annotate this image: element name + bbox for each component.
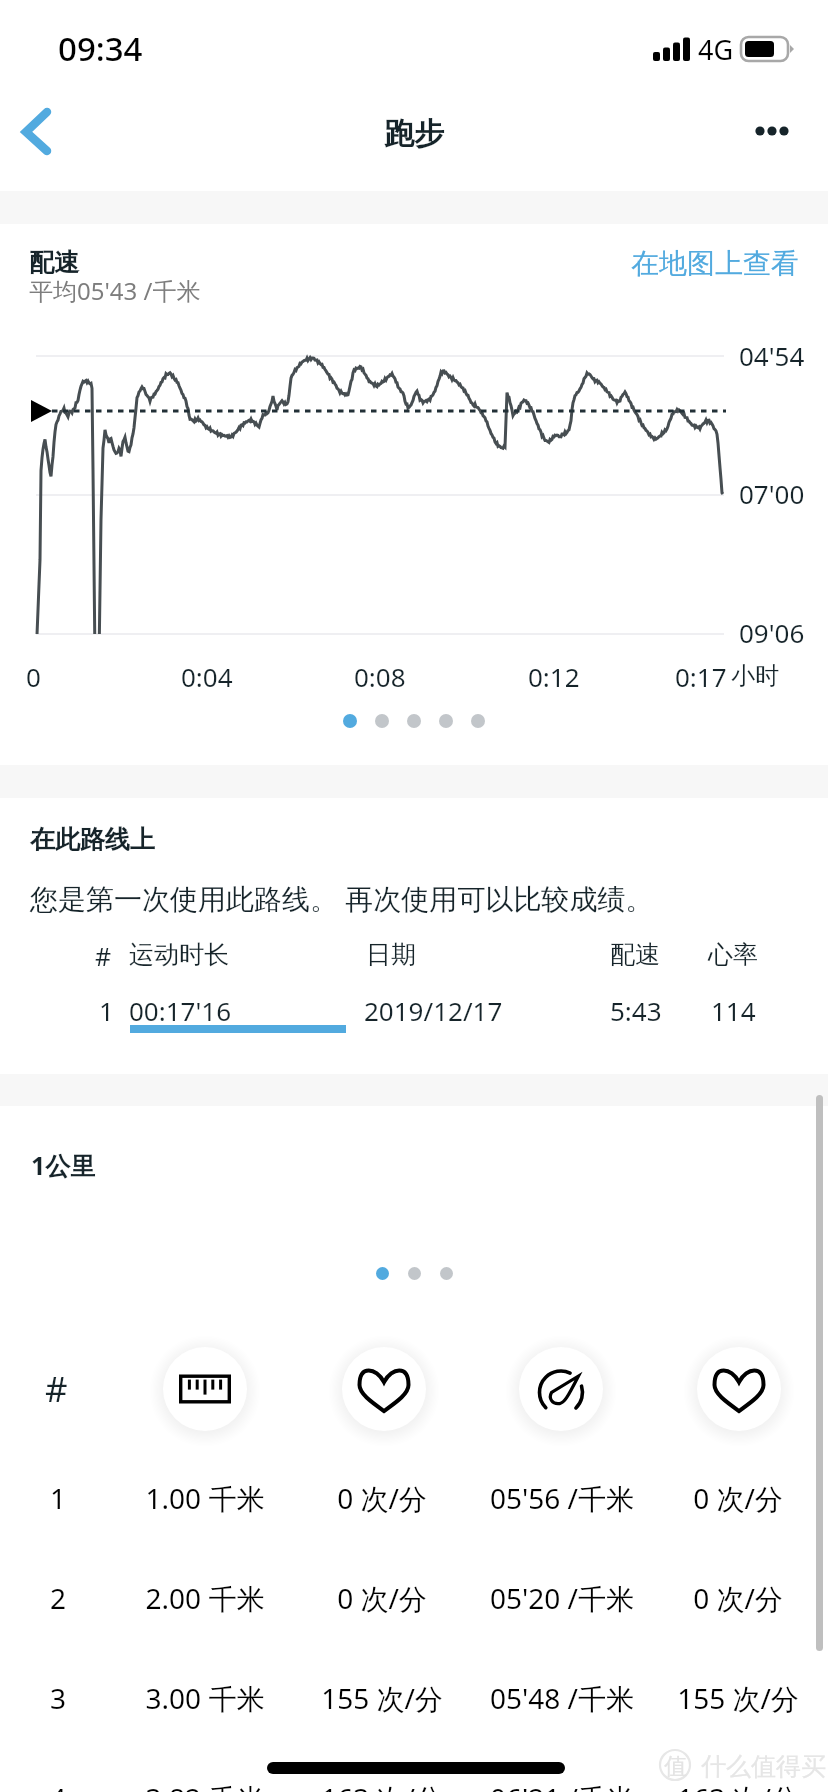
staticText: 07'00 <box>739 476 805 511</box>
staticText: 00:17'16 <box>129 993 232 1028</box>
staticText: 平均05'43 /千米 <box>29 274 201 307</box>
staticText: 3.00 千米 <box>55 1679 355 1717</box>
staticText: 0:08 <box>354 659 406 694</box>
staticText: 3.82 千米 <box>55 1779 355 1792</box>
button[interactable]: Chart page ${i + 1} <box>343 714 357 728</box>
staticText: 值 <box>664 1752 687 1781</box>
staticText: 2 <box>0 1579 208 1617</box>
button[interactable]: Splits page ${i + 1} <box>440 1267 453 1280</box>
button[interactable]: 2 <box>0 1548 828 1648</box>
button[interactable]: 1 <box>0 978 828 1040</box>
staticText: 0 次/分 <box>232 1479 532 1517</box>
button[interactable]: Splits page ${i + 1} <box>408 1267 421 1280</box>
staticText: 小时 <box>731 661 779 691</box>
staticText: 06'21 /千米 <box>412 1779 712 1792</box>
staticText: 什么值得买 <box>701 1751 826 1782</box>
staticText: 0 次/分 <box>232 1579 532 1617</box>
staticText: 163 次/分 <box>232 1779 532 1792</box>
staticText: 163 次/分 <box>588 1779 828 1792</box>
button[interactable]: Chart page ${i + 1} <box>471 714 485 728</box>
staticText: 配速 <box>29 247 79 278</box>
staticText: 04'54 <box>739 338 805 373</box>
button[interactable]: Pace <box>511 1339 611 1439</box>
staticText: 155 次/分 <box>588 1679 828 1717</box>
staticText: 2.00 千米 <box>55 1579 355 1617</box>
staticText: 1 <box>0 1479 208 1517</box>
button[interactable]: Heart rate <box>689 1339 789 1439</box>
staticText: # <box>95 939 112 973</box>
staticText: 跑步 <box>384 115 444 153</box>
staticText: 2019/12/17 <box>364 993 503 1028</box>
staticText: 配速 <box>610 939 660 970</box>
staticText: 05'48 /千米 <box>412 1679 712 1717</box>
staticText: 0:12 <box>528 659 580 694</box>
button[interactable]: Back <box>6 92 86 182</box>
button[interactable]: Chart page ${i + 1} <box>439 714 453 728</box>
button[interactable]: 在地图上查看 <box>631 246 799 281</box>
staticText: 在此路线上 <box>30 824 155 855</box>
button[interactable]: 4 <box>0 1748 828 1792</box>
staticText: 05'20 /千米 <box>412 1579 712 1617</box>
staticText: 114 <box>711 993 756 1028</box>
button[interactable]: Chart page ${i + 1} <box>375 714 389 728</box>
staticText: 心率 <box>708 939 758 970</box>
button[interactable]: 3 <box>0 1648 828 1748</box>
staticText: 3 <box>0 1679 208 1717</box>
staticText: 0 次/分 <box>588 1579 828 1617</box>
staticText: 09'06 <box>739 615 805 650</box>
staticText: 155 次/分 <box>232 1679 532 1717</box>
staticText: 运动时长 <box>129 939 229 970</box>
staticText: 1.00 千米 <box>55 1479 355 1517</box>
staticText: 1 <box>99 993 114 1028</box>
staticText: 0:04 <box>181 659 233 694</box>
staticText: 05'56 /千米 <box>412 1479 712 1517</box>
staticText: # <box>45 1365 68 1413</box>
button[interactable]: Distance <box>155 1339 255 1439</box>
staticText: 日期 <box>366 939 416 970</box>
staticText: 您是第一次使用此路线。 再次使用可以比较成绩。 <box>30 879 654 917</box>
staticText: 在地图上查看 <box>631 246 799 281</box>
button[interactable]: 1 <box>0 1448 828 1548</box>
button[interactable]: More options <box>730 88 820 191</box>
staticText: 09:34 <box>58 26 143 71</box>
button[interactable]: Chart page ${i + 1} <box>407 714 421 728</box>
staticText: 4 <box>0 1779 208 1792</box>
button[interactable]: Splits page ${i + 1} <box>376 1267 389 1280</box>
staticText: 0:17 <box>675 659 727 694</box>
staticText: 0 次/分 <box>588 1479 828 1517</box>
staticText: 1公里 <box>31 1148 96 1182</box>
staticText: 4G <box>698 31 734 68</box>
button[interactable]: Heart rate <box>334 1339 434 1439</box>
staticText: 5:43 <box>610 993 662 1028</box>
staticText: 0 <box>26 659 41 694</box>
